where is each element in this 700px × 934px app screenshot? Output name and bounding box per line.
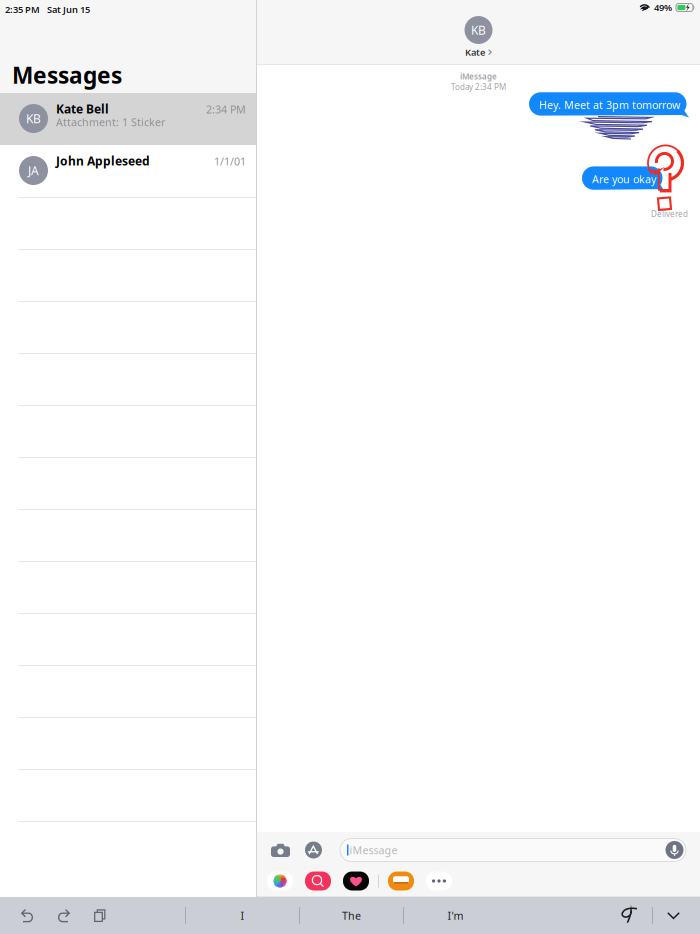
button[interactable]: I'm bbox=[404, 897, 507, 934]
button[interactable]: Memoji Stickers bbox=[388, 871, 414, 890]
staticText: iMessage bbox=[349, 843, 397, 857]
staticText: Are you okay bbox=[592, 172, 656, 186]
button[interactable]: KB bbox=[464, 16, 492, 58]
button[interactable]: Paste bbox=[94, 897, 106, 934]
staticText: John Appleseed bbox=[56, 153, 150, 169]
button[interactable]: More apps bbox=[426, 871, 452, 890]
button[interactable]: Photos bbox=[267, 871, 293, 890]
button[interactable]: Undo bbox=[0, 897, 57, 934]
button[interactable]: App Store bbox=[297, 841, 330, 858]
button[interactable]: Redo bbox=[57, 897, 94, 934]
button[interactable]: I bbox=[186, 897, 299, 934]
staticText: Kate bbox=[465, 46, 485, 58]
staticText: I'm bbox=[447, 908, 463, 923]
staticText: Today 2:34 PM bbox=[451, 82, 506, 92]
staticText: Hey. Meet at 3pm tomorrow bbox=[539, 98, 680, 112]
staticText: Delivered bbox=[651, 209, 688, 219]
staticText: The bbox=[342, 908, 361, 923]
button[interactable]: Camera bbox=[257, 843, 297, 857]
button[interactable]: The bbox=[300, 897, 403, 934]
button[interactable]: JA bbox=[0, 145, 256, 197]
button[interactable]: Digital Touch bbox=[343, 871, 369, 890]
staticText: KB bbox=[471, 22, 486, 38]
staticText: 2:35 PM bbox=[5, 3, 40, 16]
staticText: 49% bbox=[654, 1, 672, 14]
staticText: JA bbox=[28, 162, 39, 178]
staticText: KB bbox=[26, 110, 41, 126]
button[interactable]: iMessage bbox=[330, 838, 700, 861]
staticText: I bbox=[240, 908, 244, 923]
staticText: 1/1/01 bbox=[214, 154, 246, 169]
button[interactable]: Handwriting bbox=[611, 897, 646, 934]
staticText: Sat Jun 15 bbox=[47, 3, 90, 16]
staticText: Messages bbox=[12, 60, 122, 90]
button[interactable]: KB bbox=[0, 93, 256, 145]
staticText: Attachment: 1 Sticker bbox=[56, 115, 165, 129]
button[interactable]: Hide keyboard bbox=[653, 897, 694, 934]
staticText: 2:34 PM bbox=[206, 102, 246, 117]
staticText: iMessage bbox=[460, 71, 497, 82]
staticText: Kate Bell bbox=[56, 101, 109, 117]
button[interactable]: Images bbox=[305, 871, 331, 890]
